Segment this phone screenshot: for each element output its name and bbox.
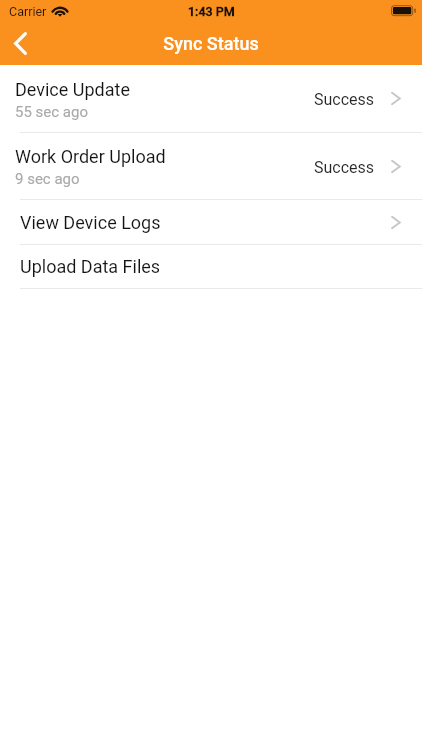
- staticText: Work Order Upload: [15, 146, 166, 167]
- staticText: 9 sec ago: [15, 170, 80, 188]
- staticText: Device Update: [15, 79, 130, 100]
- button[interactable]: Back: [0, 22, 41, 65]
- staticText: View Device Logs: [20, 212, 161, 233]
- staticText: 1:43 PM: [188, 4, 235, 19]
- staticText: Sync Status: [163, 33, 259, 54]
- button[interactable]: Upload Data Files: [0, 245, 422, 288]
- staticText: Success: [314, 90, 375, 109]
- staticText: Upload Data Files: [20, 256, 161, 277]
- button[interactable]: Device Update: [0, 65, 422, 132]
- staticText: 55 sec ago: [15, 103, 88, 121]
- button[interactable]: Work Order Upload: [0, 133, 422, 199]
- staticText: Success: [314, 158, 375, 177]
- button[interactable]: View Device Logs: [0, 200, 422, 244]
- staticText: Carrier: [9, 4, 47, 19]
